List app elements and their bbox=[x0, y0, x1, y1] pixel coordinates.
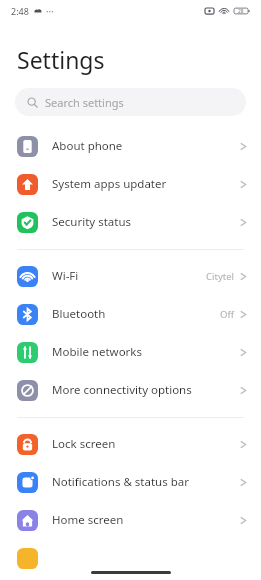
other: Wi-Fi bbox=[17, 266, 38, 287]
button[interactable]: Mobile networks bbox=[0, 333, 261, 371]
staticText: Citytel bbox=[206, 270, 234, 283]
other: System apps updater bbox=[17, 174, 38, 195]
other: Home screen bbox=[17, 510, 38, 531]
other: Display bbox=[17, 548, 38, 569]
button[interactable]: Lock screen bbox=[0, 425, 261, 463]
staticText: More connectivity options bbox=[52, 382, 192, 398]
button[interactable]: More connectivity options bbox=[0, 371, 261, 409]
staticText: Search settings bbox=[45, 95, 124, 110]
other: Mobile networks bbox=[17, 342, 38, 363]
button[interactable]: Display bbox=[0, 539, 261, 577]
staticText: Off bbox=[220, 308, 234, 321]
staticText: System apps updater bbox=[52, 176, 167, 192]
staticText: Security status bbox=[52, 214, 132, 230]
staticText: Lock screen bbox=[52, 436, 116, 452]
staticText: 2:48 bbox=[11, 5, 29, 17]
staticText: 28 bbox=[238, 8, 244, 15]
staticText: Settings bbox=[17, 44, 105, 75]
button[interactable]: Notifications and status bar bbox=[0, 463, 261, 501]
staticText: Wi-Fi bbox=[52, 268, 79, 284]
staticText: Mobile networks bbox=[52, 344, 143, 360]
button[interactable]: Home screen bbox=[0, 501, 261, 539]
staticText: Notifications & status bar bbox=[52, 474, 189, 490]
button[interactable]: Bluetooth bbox=[0, 295, 261, 333]
staticText: Home screen bbox=[52, 512, 124, 528]
other: Security status bbox=[17, 212, 38, 233]
staticText: Bluetooth bbox=[52, 306, 106, 322]
other: About phone bbox=[17, 136, 38, 157]
other: Lock screen bbox=[17, 434, 38, 455]
other: Notifications and status bar bbox=[17, 472, 38, 493]
staticText: About phone bbox=[52, 138, 123, 154]
button[interactable]: About phone bbox=[0, 127, 261, 165]
other: Bluetooth bbox=[17, 304, 38, 325]
button[interactable]: System apps updater bbox=[0, 165, 261, 203]
other: More connectivity options bbox=[17, 380, 38, 401]
button[interactable]: Search settings bbox=[15, 88, 246, 116]
button[interactable]: Security status bbox=[0, 203, 261, 241]
button[interactable]: Wi-Fi bbox=[0, 257, 261, 295]
